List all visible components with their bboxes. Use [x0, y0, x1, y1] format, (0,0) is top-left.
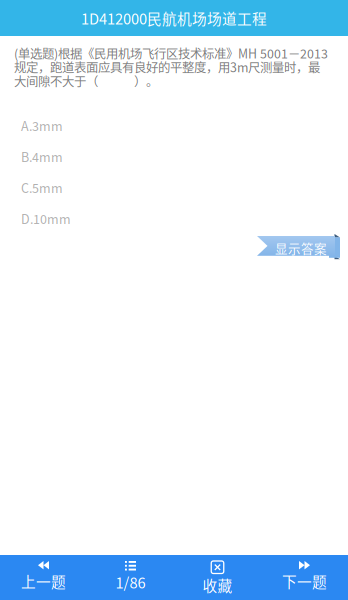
staticText: 收藏	[202, 574, 232, 596]
button[interactable]: 收藏	[174, 555, 261, 600]
staticText: D.10mm	[21, 209, 71, 227]
button[interactable]: B.4mm	[0, 141, 348, 172]
button[interactable]: 显示答案	[257, 234, 341, 260]
button[interactable]: 上一题	[0, 555, 87, 600]
staticText: 1D412000民航机场场道工程	[81, 7, 267, 29]
button[interactable]: A.3mm	[0, 110, 348, 141]
staticText: 下一题	[282, 570, 327, 592]
staticText: B.4mm	[21, 147, 63, 165]
staticText: 显示答案	[275, 239, 327, 257]
staticText: (单选题)根据《民用机场飞行区技术标准》MH 5001－2013 规定，跑道表面…	[14, 44, 328, 90]
staticText: A.3mm	[21, 116, 63, 134]
staticText: 上一题	[21, 570, 66, 592]
staticText: C.5mm	[21, 178, 63, 196]
button[interactable]: 下一题	[261, 555, 348, 600]
button[interactable]: C.5mm	[0, 172, 348, 203]
button[interactable]: D.10mm	[0, 203, 348, 234]
staticText: 1/86	[115, 571, 145, 593]
button[interactable]: 1/86	[87, 555, 174, 600]
